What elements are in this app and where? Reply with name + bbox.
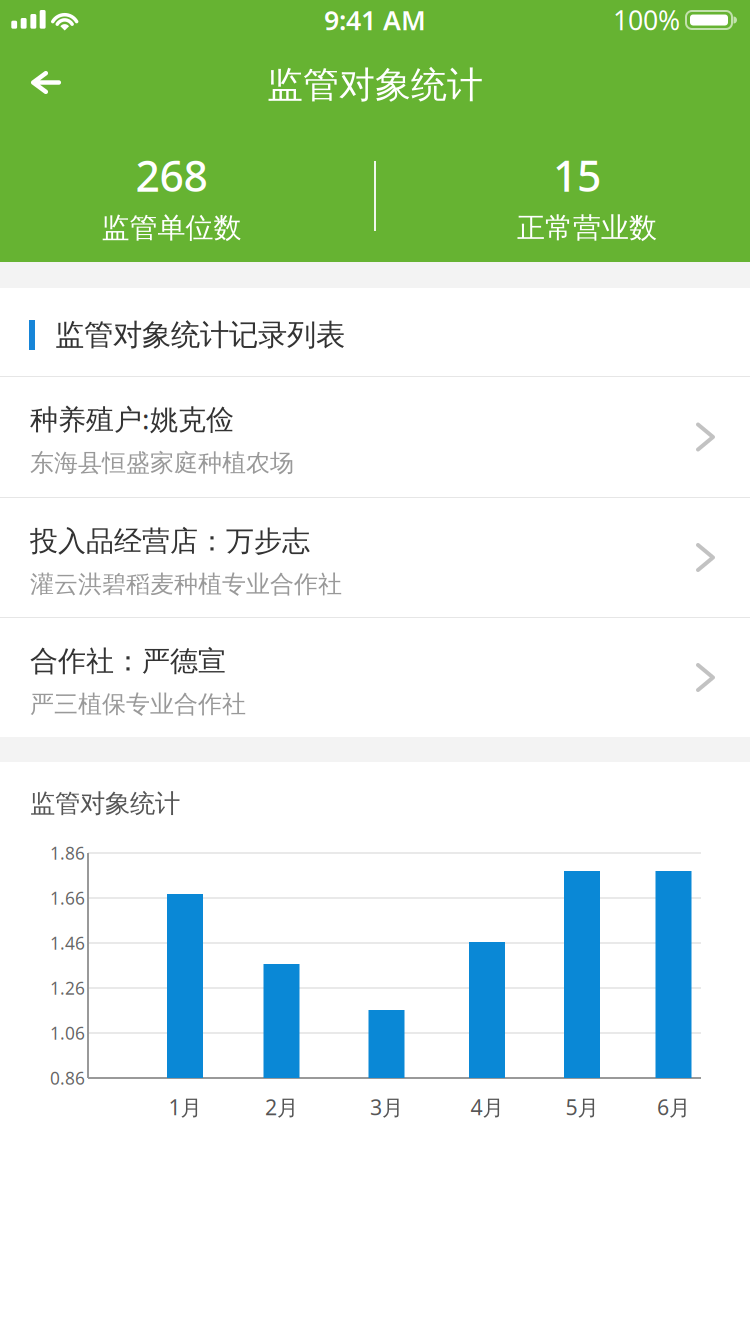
staticText: 1.66 <box>50 886 85 909</box>
staticText: 5月 <box>565 1093 598 1121</box>
staticText: 投入品经营店：万步志 <box>30 524 310 558</box>
staticText: 监管对象统计 <box>30 788 180 819</box>
staticText: 1.26 <box>50 976 85 999</box>
staticText: 种养殖户:姚克俭 <box>30 400 234 437</box>
button[interactable]: 投入品经营店：万步志 <box>0 498 750 617</box>
staticText: 0.86 <box>50 1066 85 1089</box>
button[interactable]: Back <box>0 40 750 130</box>
staticText: 268 <box>135 147 207 204</box>
staticText: 东海县恒盛家庭种植农场 <box>30 448 294 478</box>
staticText: 100% <box>613 2 680 38</box>
staticText: 6月 <box>657 1093 690 1121</box>
staticText: 合作社：严德宣 <box>30 644 226 678</box>
staticText: 监管对象统计 <box>267 63 483 107</box>
staticText: 1.06 <box>50 1021 85 1044</box>
staticText: 1.46 <box>50 931 85 954</box>
button[interactable]: 合作社：严德宣 <box>0 618 750 737</box>
staticText: 9:41 AM <box>324 2 426 38</box>
staticText: 15 <box>553 147 601 204</box>
staticText: 3月 <box>370 1093 403 1121</box>
staticText: 严三植保专业合作社 <box>30 689 246 719</box>
staticText: 监管单位数 <box>101 211 241 245</box>
staticText: 4月 <box>470 1093 503 1121</box>
staticText: 1.86 <box>50 841 85 864</box>
staticText: 灌云洪碧稻麦种植专业合作社 <box>30 569 342 599</box>
staticText: 2月 <box>265 1093 298 1121</box>
button[interactable]: 种养殖户:姚克俭 <box>0 377 750 497</box>
staticText: 监管对象统计记录列表 <box>55 317 345 353</box>
staticText: 1月 <box>168 1093 201 1121</box>
staticText: 正常营业数 <box>517 211 657 245</box>
